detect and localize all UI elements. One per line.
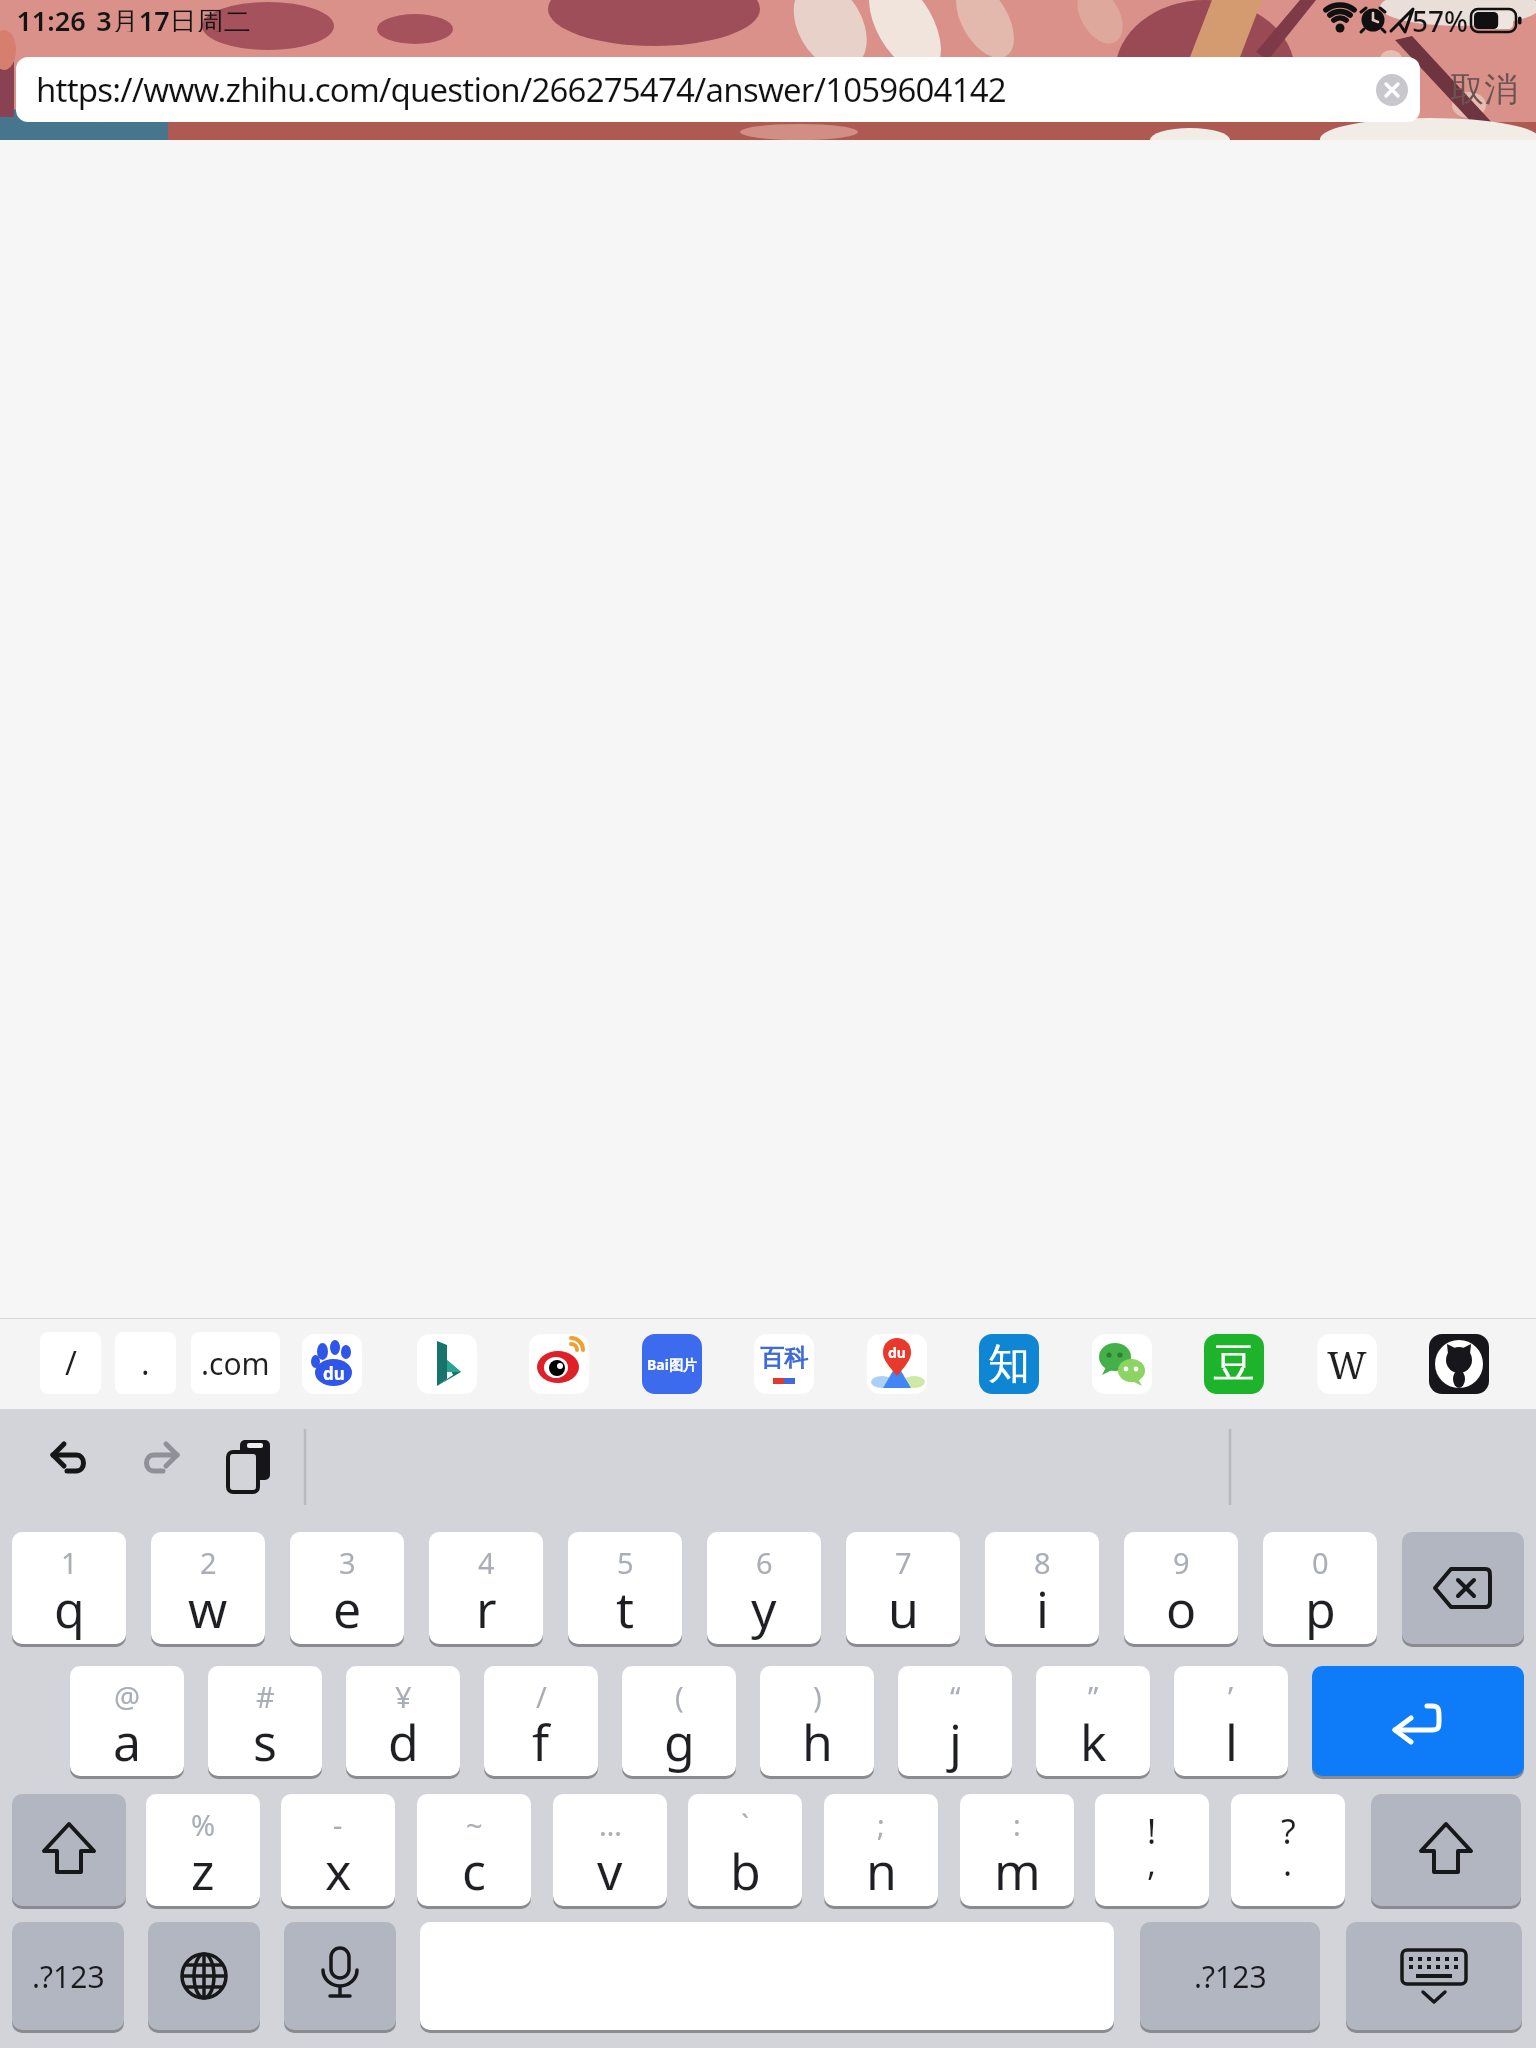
button[interactable]: https://www.zhihu.com/question/266275474… (16, 57, 1420, 122)
staticText: 5 (617, 1543, 634, 1582)
button[interactable] (1376, 74, 1408, 106)
staticText: g (664, 1708, 695, 1776)
staticText: … (599, 1805, 622, 1844)
button[interactable]: ; (824, 1794, 938, 1906)
button[interactable]: / (40, 1332, 101, 1394)
button[interactable]: 4 (429, 1532, 543, 1644)
staticText: W (1327, 1338, 1367, 1390)
button[interactable]: “ (898, 1666, 1012, 1776)
button[interactable]: ` (688, 1794, 802, 1906)
staticText: 57% (1412, 2, 1468, 32)
staticText: 11:26 (16, 2, 86, 32)
button[interactable] (1312, 1666, 1524, 1776)
button[interactable]: 6 (707, 1532, 821, 1644)
staticText: t (616, 1575, 635, 1643)
staticText: ( (675, 1677, 684, 1716)
button[interactable]: - (281, 1794, 395, 1906)
staticText: % (191, 1805, 216, 1844)
staticText: https://www.zhihu.com/question/266275474… (36, 67, 1006, 112)
button[interactable] (284, 1922, 396, 2030)
staticText: q (54, 1575, 85, 1643)
staticText: j (949, 1708, 962, 1776)
staticText: ) (813, 1677, 822, 1716)
staticText: d (388, 1708, 419, 1776)
button[interactable]: 3 (290, 1532, 404, 1644)
staticText: e (333, 1575, 362, 1643)
staticText: . (141, 1341, 150, 1385)
button[interactable] (148, 1922, 260, 2030)
button[interactable]: ? (1231, 1794, 1345, 1906)
button[interactable] (1429, 1334, 1489, 1394)
staticText: o (1166, 1575, 1197, 1643)
staticText: r (476, 1575, 497, 1643)
button[interactable] (1402, 1532, 1524, 1644)
staticText: k (1080, 1708, 1107, 1776)
button[interactable]: 0 (1263, 1532, 1377, 1644)
button[interactable]: .?123 (1140, 1922, 1320, 2030)
button[interactable] (12, 1794, 126, 1906)
staticText: v (597, 1837, 623, 1905)
button[interactable]: … (553, 1794, 667, 1906)
button[interactable]: .com (191, 1332, 280, 1394)
button[interactable]: .?123 (12, 1922, 124, 2030)
staticText: du (323, 1362, 345, 1385)
staticText: . (1283, 1840, 1293, 1886)
staticText: c (462, 1837, 486, 1905)
staticText: 取消 (1450, 68, 1518, 111)
staticText: 百科 (760, 1343, 808, 1373)
staticText: a (113, 1708, 142, 1776)
staticText: .com (201, 1343, 270, 1384)
button[interactable]: 5 (568, 1532, 682, 1644)
button[interactable]: 2 (151, 1532, 265, 1644)
staticText: h (802, 1708, 833, 1776)
button[interactable]: ! (1095, 1794, 1209, 1906)
button[interactable]: 1 (12, 1532, 126, 1644)
button[interactable]: du (867, 1334, 927, 1394)
button[interactable]: @ (70, 1666, 184, 1776)
button[interactable] (417, 1334, 477, 1394)
button[interactable]: 8 (985, 1532, 1099, 1644)
button[interactable]: # (208, 1666, 322, 1776)
staticText: 8 (1034, 1543, 1051, 1582)
button[interactable]: : (960, 1794, 1074, 1906)
button[interactable]: W (1317, 1334, 1377, 1394)
staticText: .?123 (32, 1956, 105, 1997)
button[interactable]: 豆 (1204, 1334, 1264, 1394)
staticText: “ (950, 1677, 961, 1716)
staticText: ’ (1228, 1677, 1234, 1716)
staticText: f (532, 1708, 550, 1776)
staticText: x (325, 1837, 352, 1905)
button[interactable]: / (484, 1666, 598, 1776)
button[interactable]: 7 (846, 1532, 960, 1644)
staticText: ! (1147, 1808, 1157, 1854)
staticText: # (256, 1677, 275, 1716)
button[interactable]: Bai图片 (642, 1334, 702, 1394)
button[interactable]: 取消 (1432, 57, 1536, 122)
staticText: , (1147, 1840, 1157, 1886)
button[interactable]: 知 (979, 1334, 1039, 1394)
button[interactable]: ’ (1174, 1666, 1288, 1776)
staticText: u (888, 1575, 919, 1643)
button[interactable]: ( (622, 1666, 736, 1776)
staticText: ` (741, 1805, 750, 1844)
button[interactable] (1371, 1794, 1521, 1906)
button[interactable] (1346, 1922, 1522, 2030)
staticText: ¥ (395, 1677, 412, 1716)
button[interactable]: . (115, 1332, 176, 1394)
button[interactable]: ” (1036, 1666, 1150, 1776)
button[interactable]: 百科 (754, 1334, 814, 1394)
button[interactable]: du (302, 1334, 362, 1394)
staticText: b (730, 1837, 761, 1905)
staticText: 7 (895, 1543, 912, 1582)
button[interactable]: ) (760, 1666, 874, 1776)
staticText: 3月17日周二 (96, 2, 251, 32)
staticText: 9 (1173, 1543, 1190, 1582)
button[interactable]: % (146, 1794, 260, 1906)
button[interactable]: ~ (417, 1794, 531, 1906)
button[interactable]: ¥ (346, 1666, 460, 1776)
button[interactable] (529, 1334, 589, 1394)
button[interactable]: 9 (1124, 1532, 1238, 1644)
button[interactable] (1092, 1334, 1152, 1394)
staticText: n (866, 1837, 897, 1905)
